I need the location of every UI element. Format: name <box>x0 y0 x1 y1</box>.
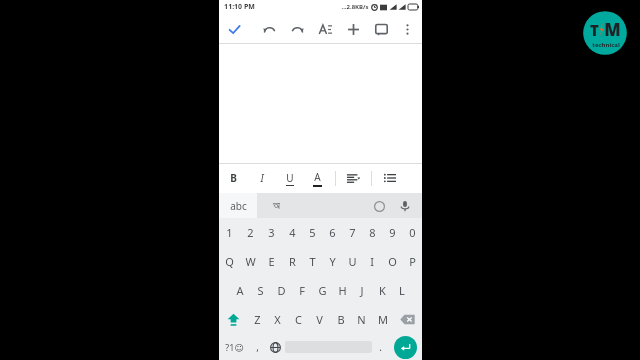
staticText: M <box>604 18 621 41</box>
staticText: T <box>309 254 316 269</box>
staticText: K <box>379 283 386 298</box>
staticText: G <box>318 283 327 298</box>
button[interactable]: T <box>302 247 322 276</box>
button[interactable]: Formatting <box>315 19 335 39</box>
button[interactable]: C <box>288 305 309 334</box>
staticText: Y <box>329 254 336 269</box>
staticText: ...2.8KB/s <box>341 3 369 11</box>
staticText: A <box>236 283 244 298</box>
staticText: W <box>245 254 256 269</box>
button[interactable]: abc <box>219 193 257 218</box>
button[interactable]: Redo <box>287 19 307 39</box>
button[interactable]: J <box>352 276 372 305</box>
staticText: E <box>268 254 275 269</box>
staticText: M <box>378 312 388 327</box>
button[interactable]: A <box>229 276 250 305</box>
staticText: S <box>257 283 264 298</box>
button[interactable]: V <box>309 305 330 334</box>
staticText: 1 <box>226 225 233 240</box>
button[interactable]: 0 <box>402 218 422 247</box>
button[interactable]: More options <box>397 19 417 39</box>
button[interactable]: , <box>249 334 266 360</box>
staticText: D <box>277 283 286 298</box>
staticText: 3 <box>268 225 275 240</box>
button[interactable]: M <box>372 305 393 334</box>
button[interactable]: Italic <box>253 166 270 190</box>
staticText: , <box>256 340 259 354</box>
button[interactable]: List <box>381 166 398 190</box>
button[interactable]: 5 <box>302 218 322 247</box>
staticText: 6 <box>329 225 336 240</box>
button[interactable]: H <box>332 276 352 305</box>
staticText: U <box>286 171 294 185</box>
button[interactable]: . <box>372 334 389 360</box>
button[interactable]: Insert <box>343 19 363 39</box>
staticText: 9 <box>389 225 396 240</box>
button[interactable]: 7 <box>342 218 362 247</box>
button[interactable]: P <box>402 247 422 276</box>
button[interactable]: G <box>312 276 332 305</box>
button[interactable]: L <box>392 276 412 305</box>
button[interactable]: Bold <box>225 166 242 190</box>
button[interactable]: Backspace <box>393 305 422 334</box>
button[interactable]: Text colour <box>309 166 326 190</box>
staticText: R <box>289 254 296 269</box>
staticText: P <box>409 254 416 269</box>
button[interactable]: Enter <box>394 336 417 359</box>
staticText: ?1☺ <box>225 341 244 353</box>
staticText: J <box>360 283 364 298</box>
staticText: 7 <box>349 225 356 240</box>
staticText: B <box>337 312 345 327</box>
button[interactable]: X <box>267 305 288 334</box>
button[interactable]: S <box>250 276 271 305</box>
staticText: অ <box>273 200 280 211</box>
staticText: 0 <box>409 225 416 240</box>
staticText: 2 <box>247 225 254 240</box>
staticText: I <box>370 254 374 269</box>
button[interactable]: Y <box>322 247 342 276</box>
staticText: 8 <box>369 225 376 240</box>
button[interactable]: D <box>271 276 292 305</box>
button[interactable]: K <box>372 276 392 305</box>
staticText: B <box>230 171 237 185</box>
staticText: technical <box>592 41 620 49</box>
button[interactable]: 9 <box>382 218 402 247</box>
staticText: I <box>260 171 264 185</box>
button[interactable]: Undo <box>259 19 279 39</box>
button[interactable]: Alignment <box>345 166 362 190</box>
button[interactable]: Change language <box>266 334 285 360</box>
button[interactable]: W <box>240 247 261 276</box>
button[interactable]: 2 <box>240 218 261 247</box>
button[interactable]: Symbols <box>219 334 249 360</box>
button[interactable]: Help <box>368 195 390 217</box>
staticText: 11:10 PM <box>224 2 255 12</box>
button[interactable]: 6 <box>322 218 342 247</box>
button[interactable]: I <box>362 247 382 276</box>
staticText: . <box>379 340 382 354</box>
button[interactable]: Comment <box>371 19 391 39</box>
button[interactable]: 1 <box>219 218 240 247</box>
staticText: H <box>338 283 347 298</box>
button[interactable]: Shift <box>219 305 247 334</box>
button[interactable]: B <box>330 305 351 334</box>
button[interactable]: N <box>351 305 372 334</box>
button[interactable]: 4 <box>282 218 302 247</box>
button[interactable]: Voice input <box>394 195 416 217</box>
button[interactable]: O <box>382 247 402 276</box>
button[interactable]: Q <box>219 247 240 276</box>
button[interactable]: অ <box>257 193 295 218</box>
button[interactable]: 8 <box>362 218 382 247</box>
button[interactable]: F <box>292 276 312 305</box>
staticText: C <box>295 312 302 327</box>
button[interactable]: Done <box>224 19 244 39</box>
staticText: A <box>314 170 321 184</box>
button[interactable]: Z <box>247 305 267 334</box>
button[interactable]: U <box>342 247 362 276</box>
staticText: Z <box>254 312 261 327</box>
button[interactable]: Underline <box>281 166 298 190</box>
staticText: abc <box>230 199 247 213</box>
button[interactable]: 3 <box>261 218 282 247</box>
button[interactable]: E <box>261 247 282 276</box>
button[interactable]: R <box>282 247 302 276</box>
